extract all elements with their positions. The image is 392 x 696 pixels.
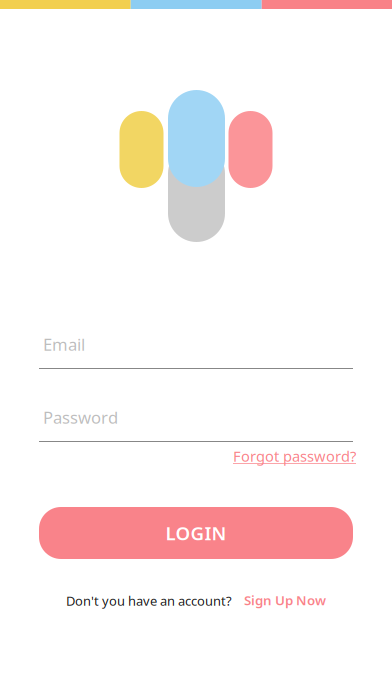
- button[interactable]: Sign Up Now: [244, 591, 326, 609]
- staticText: Sign Up Now: [244, 591, 326, 609]
- staticText: Forgot password?: [233, 446, 356, 466]
- button[interactable]: Forgot password?: [233, 446, 356, 466]
- staticText: Don't you have an account?: [66, 592, 232, 610]
- button[interactable]: LOGIN: [39, 507, 353, 559]
- staticText: LOGIN: [165, 520, 226, 546]
- staticText: Password: [43, 406, 118, 429]
- staticText: Email: [43, 333, 85, 356]
